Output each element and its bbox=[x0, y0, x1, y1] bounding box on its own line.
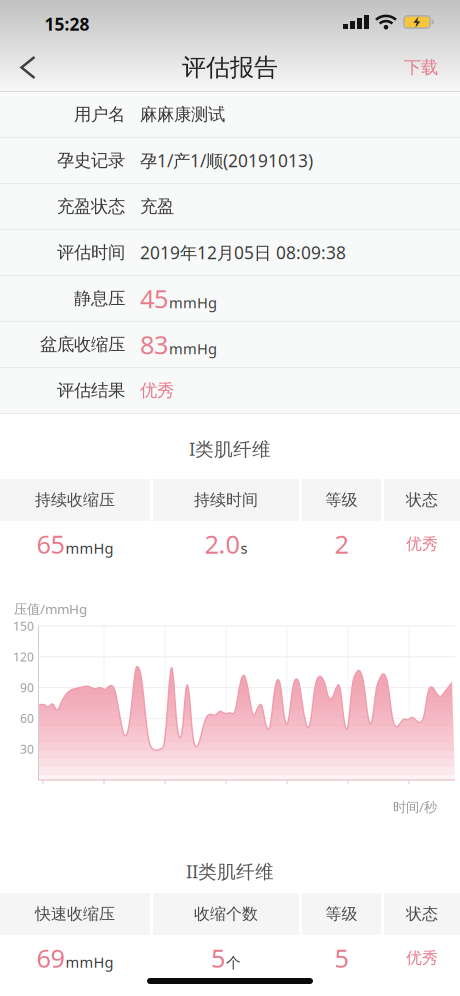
staticText: 充盈 bbox=[140, 196, 174, 217]
staticText: 收缩个数 bbox=[194, 904, 258, 924]
staticText: 充盈状态 bbox=[57, 196, 125, 217]
staticText: 盆底收缩压 bbox=[40, 334, 125, 355]
staticText: 2.0 bbox=[204, 527, 239, 561]
staticText: 下载 bbox=[404, 57, 438, 78]
staticText: 5 bbox=[334, 941, 348, 975]
staticText: mmHg bbox=[169, 339, 217, 358]
staticText: 69 bbox=[36, 941, 64, 975]
staticText: 孕1/产1/顺(20191013) bbox=[140, 149, 313, 172]
staticText: s bbox=[240, 538, 247, 558]
staticText: mmHg bbox=[65, 952, 113, 972]
staticText: 60 bbox=[20, 710, 34, 726]
staticText: 评估报告 bbox=[182, 53, 278, 82]
staticText: 时间/秒 bbox=[393, 798, 437, 816]
staticText: 用户名 bbox=[74, 104, 125, 125]
staticText: II类肌纤维 bbox=[186, 859, 274, 883]
staticText: 2019年12月05日 08:09:38 bbox=[140, 241, 346, 264]
staticText: 压值/mmHg bbox=[14, 600, 87, 618]
staticText: 90 bbox=[20, 680, 34, 695]
staticText: 优秀 bbox=[406, 534, 438, 554]
staticText: 评估时间 bbox=[57, 242, 125, 263]
staticText: 30 bbox=[20, 741, 34, 757]
staticText: 持续收缩压 bbox=[35, 490, 115, 510]
staticText: 孕史记录 bbox=[57, 150, 125, 171]
staticText: 等级 bbox=[325, 904, 357, 924]
staticText: 150 bbox=[13, 618, 34, 634]
staticText: 15:28 bbox=[44, 12, 89, 35]
staticText: 麻麻康测试 bbox=[140, 104, 225, 125]
staticText: I类肌纤维 bbox=[189, 436, 271, 461]
staticText: 优秀 bbox=[406, 948, 438, 968]
staticText: 快速收缩压 bbox=[35, 904, 115, 924]
staticText: 5 bbox=[211, 941, 225, 975]
staticText: mmHg bbox=[65, 538, 113, 558]
staticText: 评估结果 bbox=[57, 380, 125, 401]
staticText: 状态 bbox=[406, 490, 438, 510]
staticText: 个 bbox=[226, 954, 241, 972]
button[interactable]: 下载 bbox=[404, 57, 460, 78]
staticText: 120 bbox=[13, 649, 34, 665]
staticText: 静息压 bbox=[74, 288, 125, 309]
staticText: 等级 bbox=[325, 490, 357, 510]
staticText: 83 bbox=[140, 328, 168, 361]
staticText: 持续时间 bbox=[194, 490, 258, 510]
staticText: 45 bbox=[140, 282, 168, 315]
staticText: 65 bbox=[36, 527, 64, 561]
staticText: mmHg bbox=[169, 293, 217, 312]
staticText: 2 bbox=[334, 527, 348, 561]
button[interactable]: Back bbox=[0, 45, 44, 89]
staticText: 状态 bbox=[406, 904, 438, 924]
staticText: 优秀 bbox=[140, 380, 174, 401]
